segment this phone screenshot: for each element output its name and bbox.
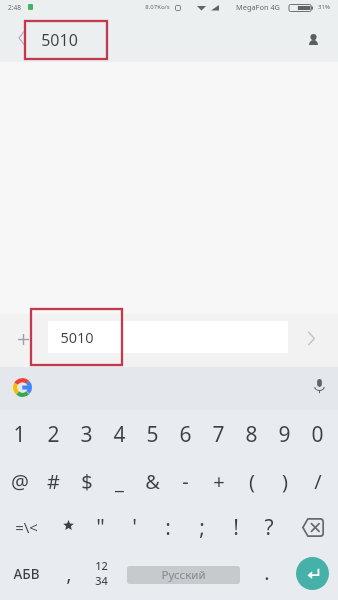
staticText: 34 (95, 573, 108, 588)
staticText: / (314, 468, 322, 495)
staticText: 8 (245, 420, 258, 449)
staticText: ' (132, 513, 137, 542)
staticText: 31% (318, 3, 330, 11)
staticText: 12 (95, 558, 108, 573)
staticText: & (145, 468, 160, 495)
button[interactable]: 0 (301, 411, 334, 457)
staticText: # (47, 468, 60, 495)
button[interactable]: _ (103, 458, 136, 504)
staticText: 5010 (41, 29, 78, 51)
staticText: + (213, 468, 225, 495)
button[interactable]: Enter (296, 557, 329, 590)
staticText: 3 (80, 420, 93, 449)
button[interactable]: 6 (169, 411, 202, 457)
staticText: 0 (311, 420, 324, 449)
button[interactable]: 5 (136, 411, 169, 457)
staticText: 2:48 (8, 3, 21, 12)
button[interactable]: Backspace (291, 504, 333, 550)
button[interactable]: Back (6, 21, 36, 55)
staticText: . (264, 559, 270, 586)
button[interactable]: ' (118, 504, 151, 550)
button[interactable]: , (54, 550, 84, 596)
button[interactable]: 1 (3, 411, 36, 457)
button[interactable]: : (151, 504, 184, 550)
staticText: MegaFon 4G (236, 2, 280, 12)
button[interactable]: Numbers (86, 550, 116, 596)
button[interactable]: 4 (103, 411, 136, 457)
staticText: ) (282, 468, 288, 495)
button[interactable]: 7 (202, 411, 235, 457)
staticText: Русский (161, 567, 206, 583)
button[interactable]: @ (3, 458, 36, 504)
button[interactable]: Contact details (296, 23, 330, 57)
staticText: ! (233, 513, 239, 542)
button[interactable]: Google search (7, 372, 37, 402)
button[interactable]: ? (252, 504, 285, 550)
staticText: 5010 (60, 327, 94, 347)
button[interactable]: ( (235, 458, 268, 504)
staticText: 2 (47, 420, 60, 449)
button[interactable]: - (169, 458, 202, 504)
staticText: @ (11, 468, 29, 495)
staticText: =\< (15, 517, 38, 537)
button[interactable]: 3 (70, 411, 103, 457)
button[interactable]: ) (268, 458, 301, 504)
staticText: : (165, 513, 171, 542)
staticText: ; (199, 513, 205, 542)
button[interactable]: " (84, 504, 117, 550)
staticText: 8.07Ko/s (145, 3, 170, 11)
staticText: $ (81, 468, 93, 495)
staticText: , (66, 560, 72, 587)
staticText: 1 (13, 420, 26, 449)
button[interactable]: Send (297, 324, 325, 352)
staticText: 9 (278, 420, 291, 449)
staticText: - (182, 468, 189, 495)
staticText: 5 (146, 420, 159, 449)
staticText: АБВ (13, 565, 40, 583)
button[interactable]: # (37, 458, 70, 504)
button[interactable]: & (136, 458, 169, 504)
button[interactable]: АБВ (4, 551, 48, 597)
button[interactable]: ! (219, 504, 252, 550)
staticText: ( (249, 468, 255, 495)
staticText: 4 (113, 420, 126, 449)
staticText: ? (264, 513, 274, 542)
staticText: _ (115, 468, 124, 495)
button[interactable]: ; (185, 504, 218, 550)
staticText: " (96, 513, 105, 542)
button[interactable]: + (202, 458, 235, 504)
staticText: 6 (179, 420, 192, 449)
button[interactable]: Star (52, 502, 85, 548)
button[interactable]: 9 (268, 411, 301, 457)
button[interactable]: $ (70, 458, 103, 504)
staticText: 7 (212, 420, 225, 449)
button[interactable]: 8 (235, 411, 268, 457)
button[interactable]: Add attachment (10, 326, 36, 352)
button[interactable]: . (252, 549, 282, 595)
button[interactable]: Русский (127, 566, 240, 584)
button[interactable]: =\< (5, 504, 47, 550)
button[interactable]: / (301, 458, 334, 504)
button[interactable]: 5010 (48, 321, 288, 353)
button[interactable]: 2 (37, 411, 70, 457)
button[interactable]: Voice input (304, 371, 334, 401)
